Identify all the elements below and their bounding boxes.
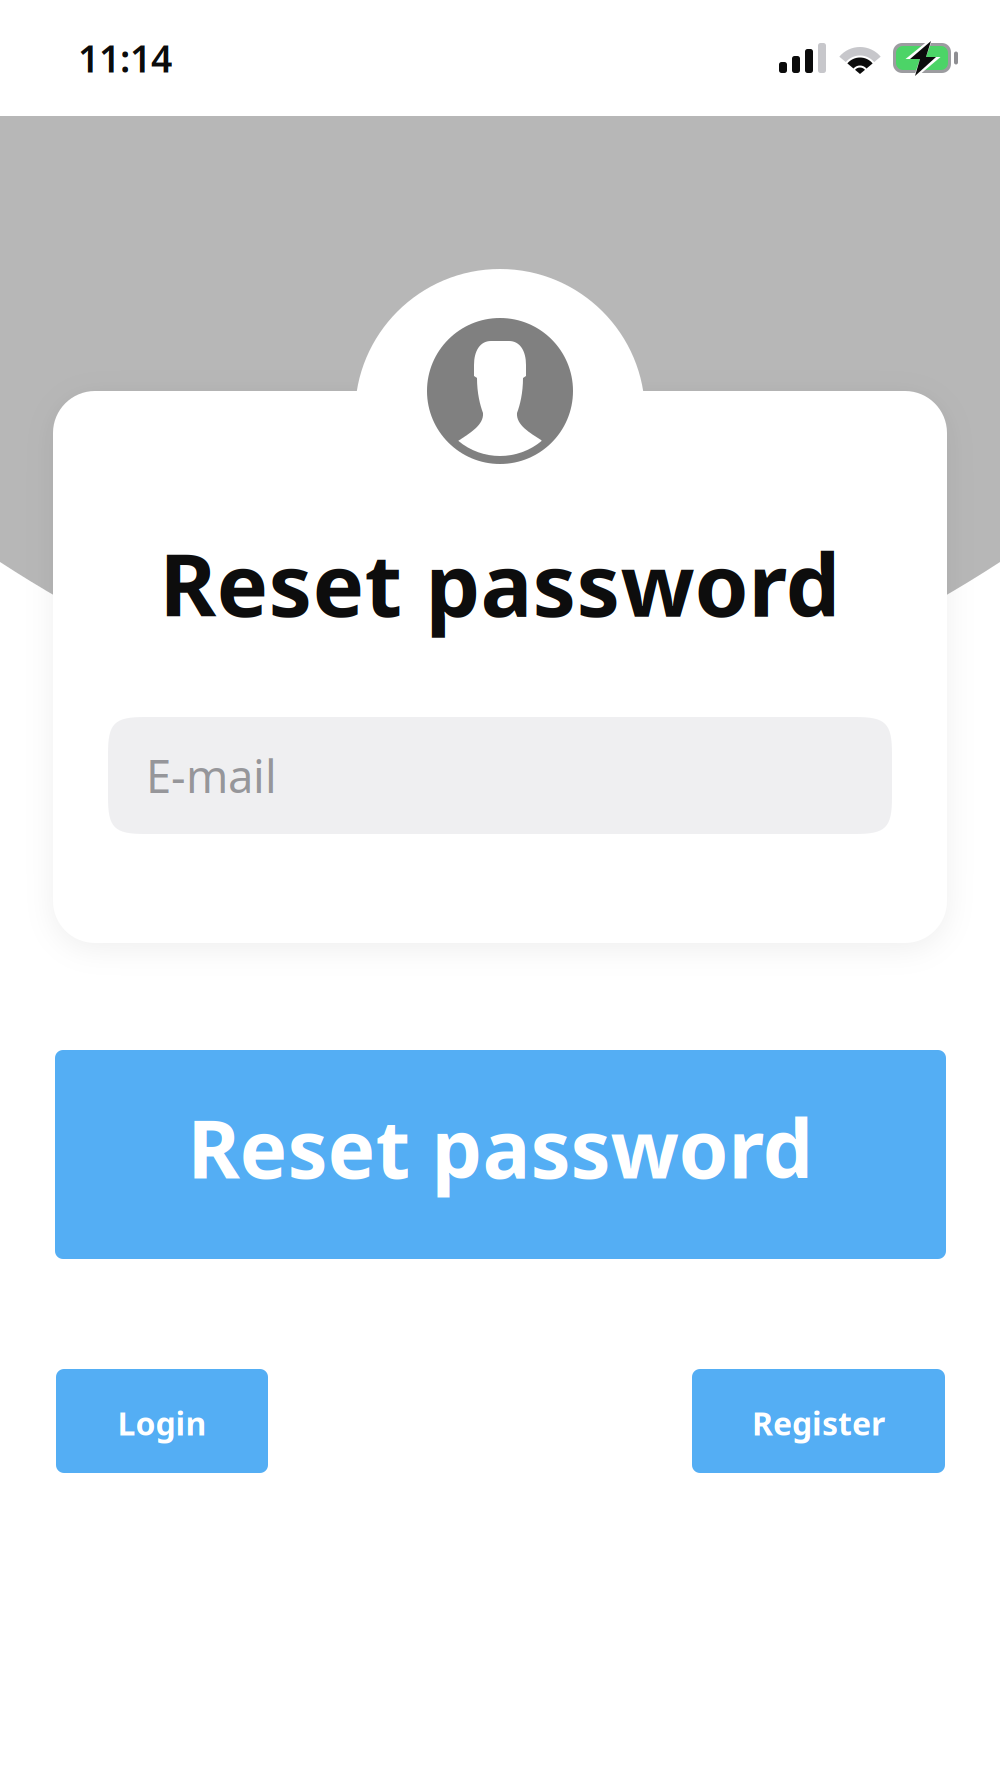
staticText: Login bbox=[117, 1402, 206, 1444]
staticText: Reset password bbox=[187, 1094, 813, 1201]
staticText: 11:14 bbox=[78, 33, 172, 83]
staticText: Register bbox=[752, 1402, 885, 1444]
staticText: E-mail bbox=[146, 745, 277, 806]
button[interactable]: Reset password bbox=[55, 1050, 946, 1259]
button[interactable]: Register bbox=[692, 1369, 945, 1473]
staticText: Reset password bbox=[159, 525, 840, 641]
button[interactable]: Login bbox=[56, 1369, 268, 1473]
